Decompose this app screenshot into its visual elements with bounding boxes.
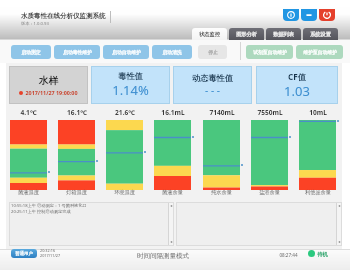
button[interactable] xyxy=(58,120,95,190)
staticText: 2017/11/27 xyxy=(40,253,61,258)
staticText: 20:32:16 xyxy=(40,248,56,253)
button[interactable] xyxy=(299,120,336,190)
button[interactable] xyxy=(203,120,240,190)
staticText: 盐溶余量 xyxy=(259,189,280,196)
button[interactable]: 试剂泵自动维护 xyxy=(246,45,293,59)
staticText: 启动自动维护 xyxy=(112,49,141,55)
staticText: 20:25:11上午 控制启动测定完成 xyxy=(11,209,71,215)
staticText: 停止 xyxy=(208,49,218,55)
button[interactable]: 数据列表 xyxy=(266,28,301,40)
button[interactable]: 启动测定 xyxy=(11,45,51,59)
button[interactable]: 系统设置 xyxy=(303,28,338,40)
staticText: 毒性值 xyxy=(118,71,143,81)
button[interactable]: 状态监控 xyxy=(192,28,227,40)
staticText: 4.1℃ xyxy=(20,108,37,117)
staticText: 水样 xyxy=(39,75,58,87)
staticText: 菌液余量 xyxy=(162,189,183,196)
button[interactable]: Close xyxy=(319,9,335,21)
button[interactable]: 图形分析 xyxy=(229,28,264,40)
button[interactable]: 启动毒性维护 xyxy=(54,45,100,59)
button[interactable]: Info xyxy=(283,9,299,21)
staticText: 水质毒性在线分析仪监测系统 xyxy=(21,12,106,20)
staticText: 纯水余量 xyxy=(211,189,232,196)
staticText: 时间间隔测量模式 xyxy=(137,252,189,260)
staticText: 菌液温度 xyxy=(18,189,39,196)
button[interactable]: 动态毒性值 xyxy=(173,66,252,104)
staticText: 1.14% xyxy=(112,81,149,99)
staticText: 2017/11/27 19:00:00 xyxy=(25,89,78,96)
staticText: - - - xyxy=(205,83,220,97)
staticText: 灯箱温度 xyxy=(66,189,87,196)
button[interactable]: 停止 xyxy=(198,45,227,59)
staticText: 环境温度 xyxy=(114,189,135,196)
staticText: 启动毒性维护 xyxy=(63,49,92,55)
staticText: 1.03 xyxy=(284,82,310,100)
staticText: 图形分析 xyxy=(236,31,257,38)
staticText: 启动清洗 xyxy=(162,49,182,55)
staticText: 待机 xyxy=(317,251,328,258)
button[interactable] xyxy=(106,120,143,190)
button[interactable]: 毒性值 xyxy=(91,66,170,104)
button[interactable] xyxy=(251,120,288,190)
staticText: 维护泵自动维护 xyxy=(303,49,337,55)
staticText: 21.6℃ xyxy=(115,108,135,117)
button[interactable]: 水样 xyxy=(9,66,88,104)
staticText: 启动测定 xyxy=(21,49,41,55)
staticText: 16.1℃ xyxy=(67,108,87,117)
button[interactable]: CF值 xyxy=(256,66,338,104)
staticText: 10:55:18上午 启动测定：1 号菌种液化口 xyxy=(11,203,87,209)
staticText: 16.1mL xyxy=(161,108,185,117)
button[interactable]: 维护泵自动维护 xyxy=(296,45,343,59)
button[interactable]: 启动自动维护 xyxy=(103,45,149,59)
staticText: 10mL xyxy=(309,108,327,117)
staticText: 利他派余量 xyxy=(305,189,331,196)
button[interactable]: 启动清洗 xyxy=(152,45,192,59)
button[interactable]: Minimize xyxy=(301,9,317,21)
staticText: 动态毒性值 xyxy=(192,73,233,83)
staticText: 普通用户 xyxy=(15,251,33,257)
staticText: 系统设置 xyxy=(310,31,331,38)
staticText: 7550mL xyxy=(257,108,283,117)
button[interactable] xyxy=(10,120,47,190)
staticText: 数据列表 xyxy=(273,31,294,38)
staticText: 试剂泵自动维护 xyxy=(253,49,287,55)
staticText: 08:27:44 xyxy=(279,252,298,258)
button[interactable] xyxy=(154,120,191,190)
staticText: CF值 xyxy=(288,71,306,82)
staticText: 7140mL xyxy=(209,108,235,117)
staticText: 状态监控 xyxy=(199,31,220,38)
button[interactable]: 普通用户 xyxy=(11,249,37,258)
staticText: 版本：1.0.0.93 xyxy=(21,21,49,27)
